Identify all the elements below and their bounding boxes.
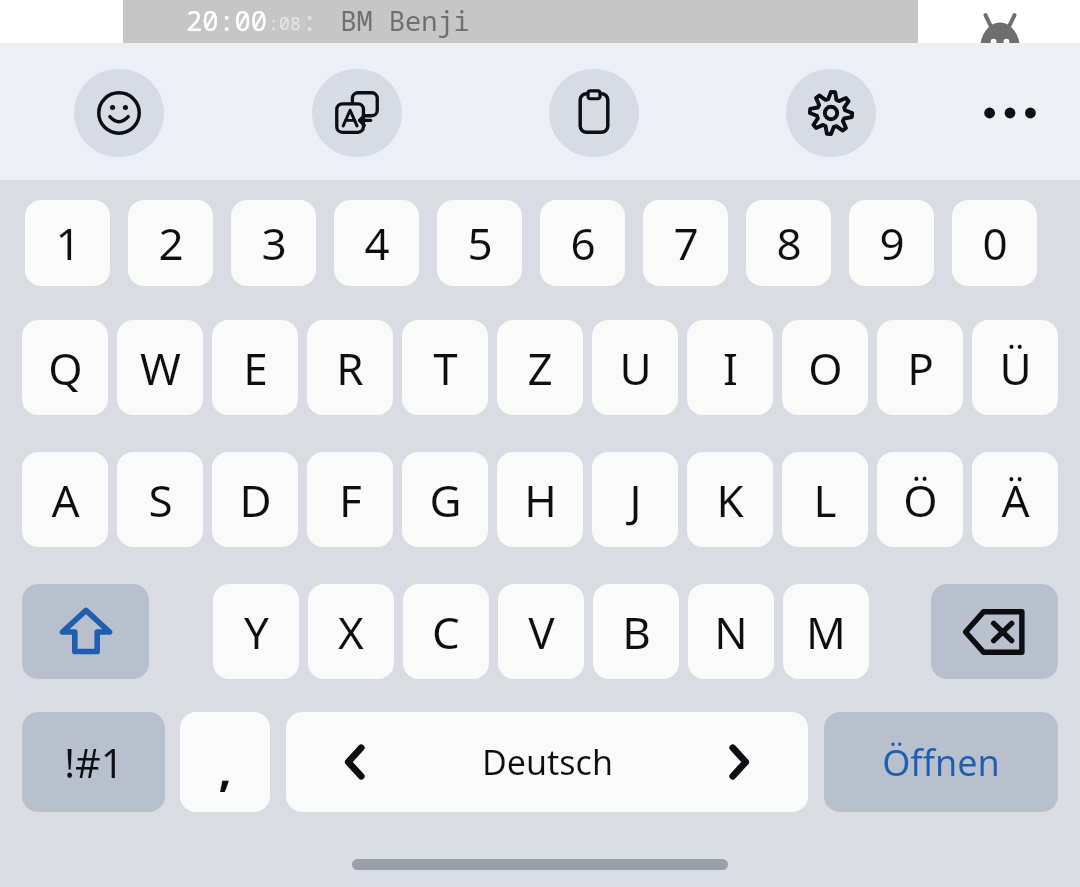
button[interactable]: 7 [643, 200, 728, 286]
button[interactable]: K [687, 452, 773, 547]
staticText: F [339, 470, 362, 530]
button[interactable]: Shift [22, 584, 149, 679]
staticText: : [301, 2, 318, 39]
button[interactable]: G [402, 452, 488, 547]
button[interactable]: 9 [849, 200, 934, 286]
staticText: B [622, 602, 651, 662]
button[interactable]: U [592, 320, 678, 415]
button[interactable]: E [212, 320, 298, 415]
staticText: H [524, 470, 557, 530]
staticText: L [813, 470, 837, 530]
staticText: J [629, 470, 642, 530]
staticText: A [51, 470, 80, 530]
staticText: Y [244, 602, 269, 662]
button[interactable]: Backspace [931, 584, 1058, 679]
staticText: O [808, 338, 843, 398]
staticText: 5 [467, 213, 493, 273]
button[interactable]: I [687, 320, 773, 415]
button[interactable]: X [308, 584, 394, 679]
staticText: Öffnen [882, 738, 1000, 787]
button[interactable]: T [402, 320, 488, 415]
staticText: T [433, 338, 458, 398]
staticText: Z [527, 338, 553, 398]
staticText: V [528, 602, 555, 662]
button[interactable]: F [307, 452, 393, 547]
staticText: :08 [268, 11, 301, 36]
staticText: R [336, 338, 364, 398]
button[interactable]: Ä [972, 452, 1058, 547]
button[interactable]: 4 [334, 200, 419, 286]
staticText: U [619, 338, 652, 398]
staticText: , [218, 737, 232, 800]
staticText: M [806, 602, 846, 662]
staticText: BM Benji [340, 2, 470, 39]
button[interactable]: 8 [746, 200, 831, 286]
staticText: 20:00 [186, 2, 267, 39]
button[interactable]: M [783, 584, 869, 679]
staticText: N [714, 602, 748, 662]
button[interactable]: 3 [231, 200, 316, 286]
button[interactable]: J [592, 452, 678, 547]
staticText: S [148, 470, 173, 530]
button[interactable]: P [877, 320, 963, 415]
button[interactable]: A [22, 452, 108, 547]
staticText: C [432, 602, 460, 662]
button[interactable]: Y [213, 584, 299, 679]
button[interactable]: 1 [25, 200, 110, 286]
staticText: Ü [999, 338, 1032, 398]
button[interactable]: C [403, 584, 489, 679]
staticText: Q [48, 338, 83, 398]
button[interactable]: , [180, 712, 270, 812]
button[interactable]: Z [497, 320, 583, 415]
staticText: 4 [364, 213, 390, 273]
button[interactable]: V [498, 584, 584, 679]
staticText: !#1 [64, 735, 124, 789]
button[interactable]: N [688, 584, 774, 679]
button[interactable]: Translate [312, 69, 402, 157]
button[interactable]: W [117, 320, 203, 415]
button[interactable]: 6 [540, 200, 625, 286]
staticText: 0 [982, 213, 1008, 273]
button[interactable]: Öffnen [824, 712, 1058, 812]
button[interactable]: !#1 [22, 712, 165, 812]
button[interactable]: L [782, 452, 868, 547]
button[interactable]: Emoji [74, 69, 164, 157]
staticText: Ä [1001, 470, 1030, 530]
button[interactable]: R [307, 320, 393, 415]
staticText: K [716, 470, 744, 530]
button[interactable]: Ü [972, 320, 1058, 415]
staticText: D [239, 470, 272, 530]
staticText: 8 [776, 213, 802, 273]
staticText: 2 [158, 213, 184, 273]
staticText: I [723, 338, 738, 398]
staticText: 3 [261, 213, 287, 273]
button[interactable]: More options [962, 69, 1058, 157]
button[interactable]: H [497, 452, 583, 547]
button[interactable]: Q [22, 320, 108, 415]
button[interactable]: Settings [786, 69, 876, 157]
button[interactable]: O [782, 320, 868, 415]
staticText: P [907, 338, 934, 398]
button[interactable]: Deutsch [286, 712, 808, 812]
staticText: Deutsch [482, 739, 613, 785]
staticText: 9 [879, 213, 905, 273]
staticText: E [243, 338, 268, 398]
button[interactable]: Ö [877, 452, 963, 547]
button[interactable]: S [117, 452, 203, 547]
staticText: Ö [903, 470, 938, 530]
button[interactable]: 2 [128, 200, 213, 286]
button[interactable]: 0 [952, 200, 1037, 286]
staticText: X [338, 602, 364, 662]
button[interactable]: Clipboard [549, 69, 639, 157]
staticText: 6 [570, 213, 596, 273]
staticText: G [429, 470, 462, 530]
staticText: 1 [55, 213, 81, 273]
staticText: 7 [673, 213, 699, 273]
button[interactable]: 5 [437, 200, 522, 286]
button[interactable]: D [212, 452, 298, 547]
button[interactable]: B [593, 584, 679, 679]
staticText: W [140, 338, 181, 398]
